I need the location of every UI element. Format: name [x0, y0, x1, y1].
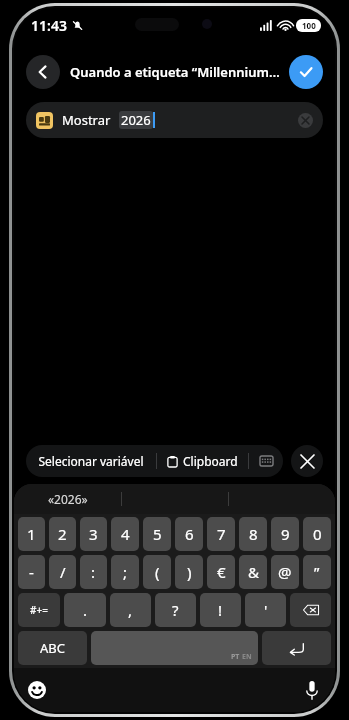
button[interactable]: & — [239, 555, 267, 589]
staticText: ABC — [40, 639, 65, 657]
button[interactable]: «2026» — [14, 484, 121, 514]
button[interactable]: 4 — [111, 517, 139, 551]
button[interactable]: ; — [111, 555, 139, 589]
button[interactable]: ! — [200, 593, 241, 627]
button[interactable]: Fechar — [291, 445, 323, 477]
button[interactable]: Emoji — [28, 681, 46, 699]
staticText: #+= — [30, 603, 48, 617]
button[interactable]: Mostrar — [26, 102, 323, 138]
button[interactable]: @ — [271, 555, 299, 589]
staticText: 8 — [249, 524, 258, 544]
staticText: 100 — [302, 20, 316, 31]
button[interactable]: 8 — [239, 517, 267, 551]
staticText: € — [217, 562, 226, 582]
button[interactable]: Microfone — [305, 681, 319, 700]
button[interactable]: Enter — [262, 631, 331, 665]
staticText: & — [248, 562, 259, 582]
staticText: 9 — [281, 524, 290, 544]
staticText: «2026» — [48, 491, 88, 507]
staticText: 2026 — [121, 111, 151, 129]
staticText: ! — [218, 600, 223, 620]
staticText: , — [128, 600, 133, 620]
button[interactable]: 6 — [175, 517, 203, 551]
staticText: Quando a etiqueta “Millennium Vi... — [70, 63, 281, 81]
staticText: 11:43 — [31, 16, 67, 35]
button[interactable]: Voltar — [26, 55, 60, 89]
staticText: ( — [155, 562, 160, 582]
button[interactable]: Selecionar variável — [26, 445, 156, 477]
staticText: . — [83, 600, 88, 620]
button[interactable]: Clipboard — [157, 445, 248, 477]
button[interactable]: : — [80, 555, 107, 589]
button[interactable]: ABC — [18, 631, 87, 665]
button[interactable]: € — [207, 555, 235, 589]
staticText: Clipboard — [183, 453, 238, 469]
button[interactable]: 9 — [271, 517, 299, 551]
button[interactable]: Limpar — [298, 113, 313, 128]
staticText: ) — [187, 562, 192, 582]
staticText: / — [60, 562, 66, 582]
button[interactable]: #+= — [18, 593, 60, 627]
staticText: 0 — [313, 524, 322, 544]
staticText: PT — [231, 652, 240, 662]
staticText: 6 — [185, 524, 194, 544]
button[interactable]: ? — [155, 593, 196, 627]
button[interactable]: Confirmar — [289, 55, 323, 89]
button[interactable] — [229, 484, 335, 514]
button[interactable]: 2 — [49, 517, 76, 551]
staticText: ? — [172, 600, 179, 620]
button[interactable]: ' — [245, 593, 286, 627]
staticText: 2 — [58, 524, 67, 544]
button[interactable]: , — [110, 593, 151, 627]
staticText: 5 — [153, 524, 162, 544]
staticText: ; — [123, 562, 128, 582]
staticText: ' — [264, 600, 268, 620]
button[interactable]: . — [64, 593, 106, 627]
button[interactable]: ) — [175, 555, 203, 589]
button[interactable]: Teclado — [249, 445, 283, 477]
button[interactable]: / — [49, 555, 76, 589]
staticText: EN — [242, 652, 252, 662]
staticText: Selecionar variável — [38, 453, 144, 469]
button[interactable]: - — [18, 555, 45, 589]
button[interactable]: ( — [143, 555, 171, 589]
staticText: 7 — [217, 524, 226, 544]
button[interactable]: ” — [303, 555, 331, 589]
button[interactable]: 3 — [80, 517, 107, 551]
button[interactable]: Apagar — [290, 593, 331, 627]
staticText: 1 — [27, 524, 36, 544]
staticText: @ — [278, 562, 292, 582]
staticText: 4 — [121, 524, 130, 544]
button[interactable]: 1 — [18, 517, 45, 551]
button[interactable]: 5 — [143, 517, 171, 551]
staticText: : — [91, 562, 96, 582]
staticText: 3 — [89, 524, 98, 544]
staticText: - — [29, 562, 34, 582]
staticText: Mostrar — [62, 111, 111, 129]
button[interactable]: Espaço — [91, 631, 258, 665]
button[interactable]: 0 — [303, 517, 331, 551]
staticText: ” — [314, 562, 320, 582]
button[interactable]: 7 — [207, 517, 235, 551]
